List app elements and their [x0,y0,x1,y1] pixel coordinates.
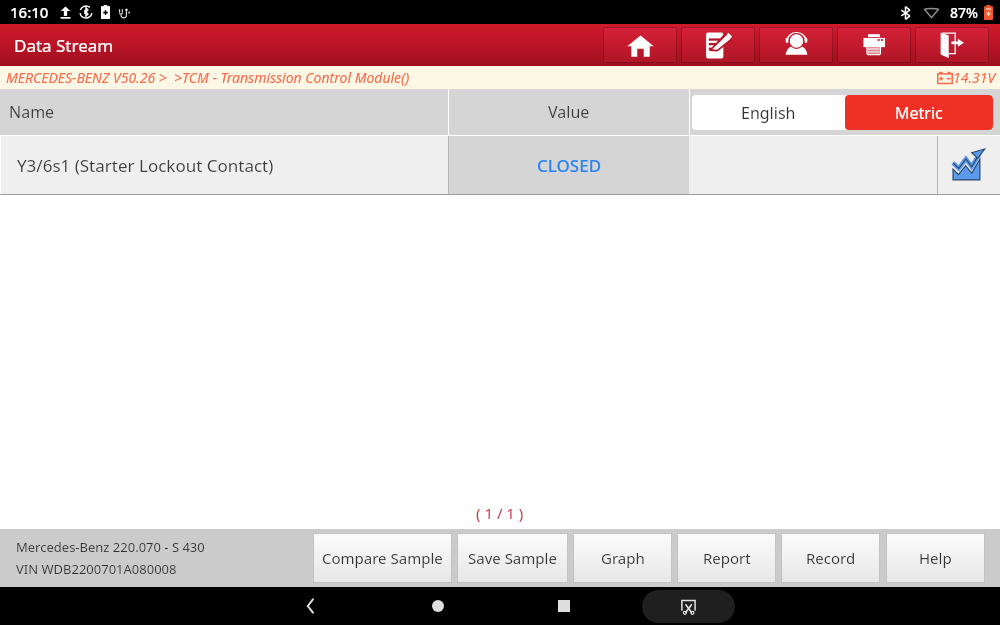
button[interactable]: Print [837,27,911,63]
button[interactable]: Home [397,587,478,625]
staticText: Metric [895,102,943,124]
button[interactable]: English [692,95,845,130]
button[interactable]: Edit Report [681,27,755,63]
staticText: 16:10 [10,2,49,22]
button[interactable]: Compare Sample [313,533,452,583]
staticText: 14.31V [953,68,996,87]
staticText: Mercedes-Benz 220.070 - S 430 [16,538,205,556]
button[interactable]: Record [781,533,880,583]
staticText: Report [703,548,751,568]
staticText: Value [548,101,590,123]
button[interactable]: Report [677,533,776,583]
button[interactable]: Y3/6s1 (Starter Lockout Contact) [0,136,1000,194]
button[interactable]: Exit [915,27,989,63]
staticText: Save Sample [468,548,557,568]
staticText: MERCEDES-BENZ V50.26 > >TCM - Transmissi… [6,68,410,87]
staticText: Compare Sample [322,548,443,568]
staticText: English [741,102,796,124]
staticText: ( 1 / 1 ) [476,503,524,523]
button[interactable]: Home [603,27,677,63]
staticText: Graph [601,548,645,568]
staticText: Data Stream [14,34,114,57]
staticText: Help [919,548,952,568]
button[interactable]: Recent apps [523,587,604,625]
button[interactable]: Graph [573,533,672,583]
button[interactable]: Metric [845,95,993,130]
staticText: 87% [950,3,978,22]
button[interactable]: Save Sample [457,533,568,583]
staticText: CLOSED [537,154,602,177]
button[interactable]: Help [886,533,985,583]
button[interactable]: Screenshot [642,590,735,623]
button[interactable]: Back [270,587,351,625]
button[interactable]: Remote Support [759,27,833,63]
button[interactable]: Graph [937,136,1000,194]
staticText: Record [806,548,856,568]
staticText: Y3/6s1 (Starter Lockout Contact) [17,154,274,177]
staticText: Name [9,101,55,123]
staticText: VIN WDB2200701A080008 [16,560,177,578]
